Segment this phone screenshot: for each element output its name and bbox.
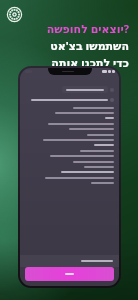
staticText: יוצאים לחופשה? bbox=[15, 21, 129, 36]
button[interactable]: Message input bbox=[20, 255, 119, 267]
staticText: השתמשו בצ'אט bbox=[15, 38, 129, 53]
button[interactable]: Start chat bbox=[25, 267, 114, 281]
other: Logo bbox=[7, 7, 22, 22]
staticText: כדי לתכנן אותה bbox=[15, 55, 129, 70]
